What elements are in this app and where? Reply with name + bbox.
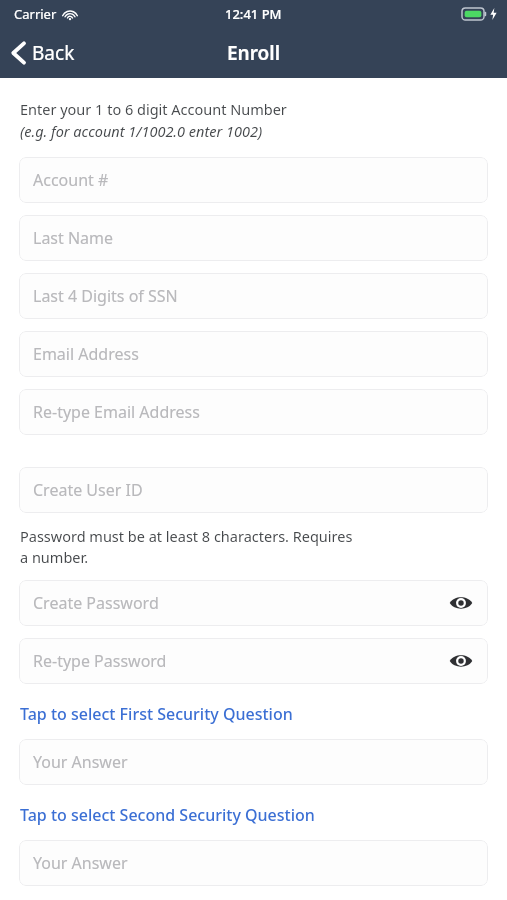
staticText: Create Password (33, 592, 159, 614)
button[interactable]: Last 4 Digits of SSN (19, 273, 488, 319)
button[interactable]: Last Name (19, 215, 488, 261)
staticText: Last Name (33, 227, 114, 249)
button[interactable]: Re-type Email Address (19, 389, 488, 435)
button[interactable]: Tap to select First Security Question (0, 701, 507, 727)
button[interactable]: Your Answer (19, 840, 488, 886)
staticText: Email Address (33, 343, 139, 365)
staticText: Tap to select Second Security Question (20, 804, 315, 826)
staticText: Back (32, 40, 75, 66)
button[interactable]: Email Address (19, 331, 488, 377)
staticText: Tap to select First Security Question (20, 703, 293, 725)
staticText: (e.g. for account 1/1002.0 enter 1002) (20, 121, 263, 141)
staticText: Enroll (227, 40, 281, 66)
button[interactable]: Show password (446, 646, 476, 676)
staticText: 12:41 PM (225, 5, 282, 23)
staticText: Your Answer (33, 852, 128, 874)
staticText: Re-type Password (33, 650, 167, 672)
staticText: a number. (20, 547, 89, 567)
button[interactable]: Re-type Password (19, 638, 488, 684)
staticText: Carrier (14, 5, 57, 23)
button[interactable]: Create User ID (19, 467, 488, 513)
staticText: Your Answer (33, 751, 128, 773)
staticText: Last 4 Digits of SSN (33, 285, 178, 307)
button[interactable]: Tap to select Second Security Question (0, 802, 507, 828)
staticText: Enter your 1 to 6 digit Account Number (20, 99, 287, 119)
button[interactable]: Your Answer (19, 739, 488, 785)
staticText: Password must be at least 8 characters. … (20, 526, 353, 546)
staticText: Account # (33, 169, 109, 191)
button[interactable]: Back (0, 34, 87, 72)
button[interactable]: Account # (19, 157, 488, 203)
staticText: Re-type Email Address (33, 401, 200, 423)
staticText: Create User ID (33, 479, 143, 501)
button[interactable]: Create Password (19, 580, 488, 626)
button[interactable]: Show password (446, 588, 476, 618)
